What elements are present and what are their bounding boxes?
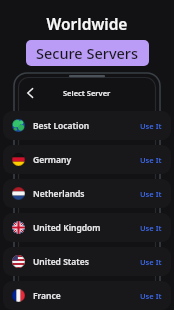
staticText: Use It xyxy=(140,189,162,199)
staticText: Use It xyxy=(140,291,162,301)
button[interactable]: Germany xyxy=(3,145,171,174)
staticText: Select Server xyxy=(63,88,111,98)
staticText: United Kingdom xyxy=(33,222,101,234)
button[interactable]: Secure Servers xyxy=(26,40,149,66)
button[interactable]: Back xyxy=(21,85,37,101)
button[interactable]: Netherlands xyxy=(3,179,171,208)
button[interactable]: United Kingdom xyxy=(3,213,171,242)
staticText: Secure Servers xyxy=(36,43,139,63)
staticText: Best Location xyxy=(33,120,90,132)
staticText: Use It xyxy=(140,121,162,131)
staticText: Use It xyxy=(140,223,162,233)
staticText: United States xyxy=(33,256,89,268)
staticText: Use It xyxy=(140,257,162,267)
staticText: Netherlands xyxy=(33,188,85,200)
staticText: Germany xyxy=(33,154,72,166)
staticText: Use It xyxy=(140,155,162,165)
button[interactable]: United States xyxy=(3,247,171,276)
staticText: France xyxy=(33,290,61,302)
staticText: Worldwide xyxy=(0,13,174,34)
button[interactable]: Best Location xyxy=(3,111,171,140)
button[interactable]: France xyxy=(3,281,171,310)
